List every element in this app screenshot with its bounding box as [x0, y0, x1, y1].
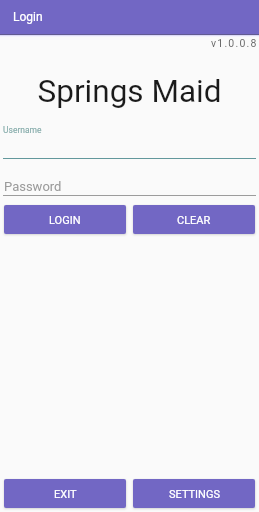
button[interactable]: Username: [0, 121, 259, 159]
staticText: Springs Maid: [0, 73, 259, 110]
staticText: EXIT: [54, 488, 77, 501]
staticText: Password: [4, 179, 62, 194]
staticText: Login: [13, 10, 43, 24]
button[interactable]: EXIT: [4, 479, 126, 508]
button[interactable]: CLEAR: [133, 205, 255, 234]
staticText: v1.0.0.8: [211, 37, 258, 49]
staticText: SETTINGS: [169, 488, 220, 501]
staticText: LOGIN: [49, 214, 81, 227]
button[interactable]: LOGIN: [4, 205, 126, 234]
button[interactable]: SETTINGS: [133, 479, 255, 508]
staticText: Username: [3, 125, 42, 135]
button[interactable]: Password: [0, 163, 259, 196]
staticText: CLEAR: [177, 214, 211, 227]
